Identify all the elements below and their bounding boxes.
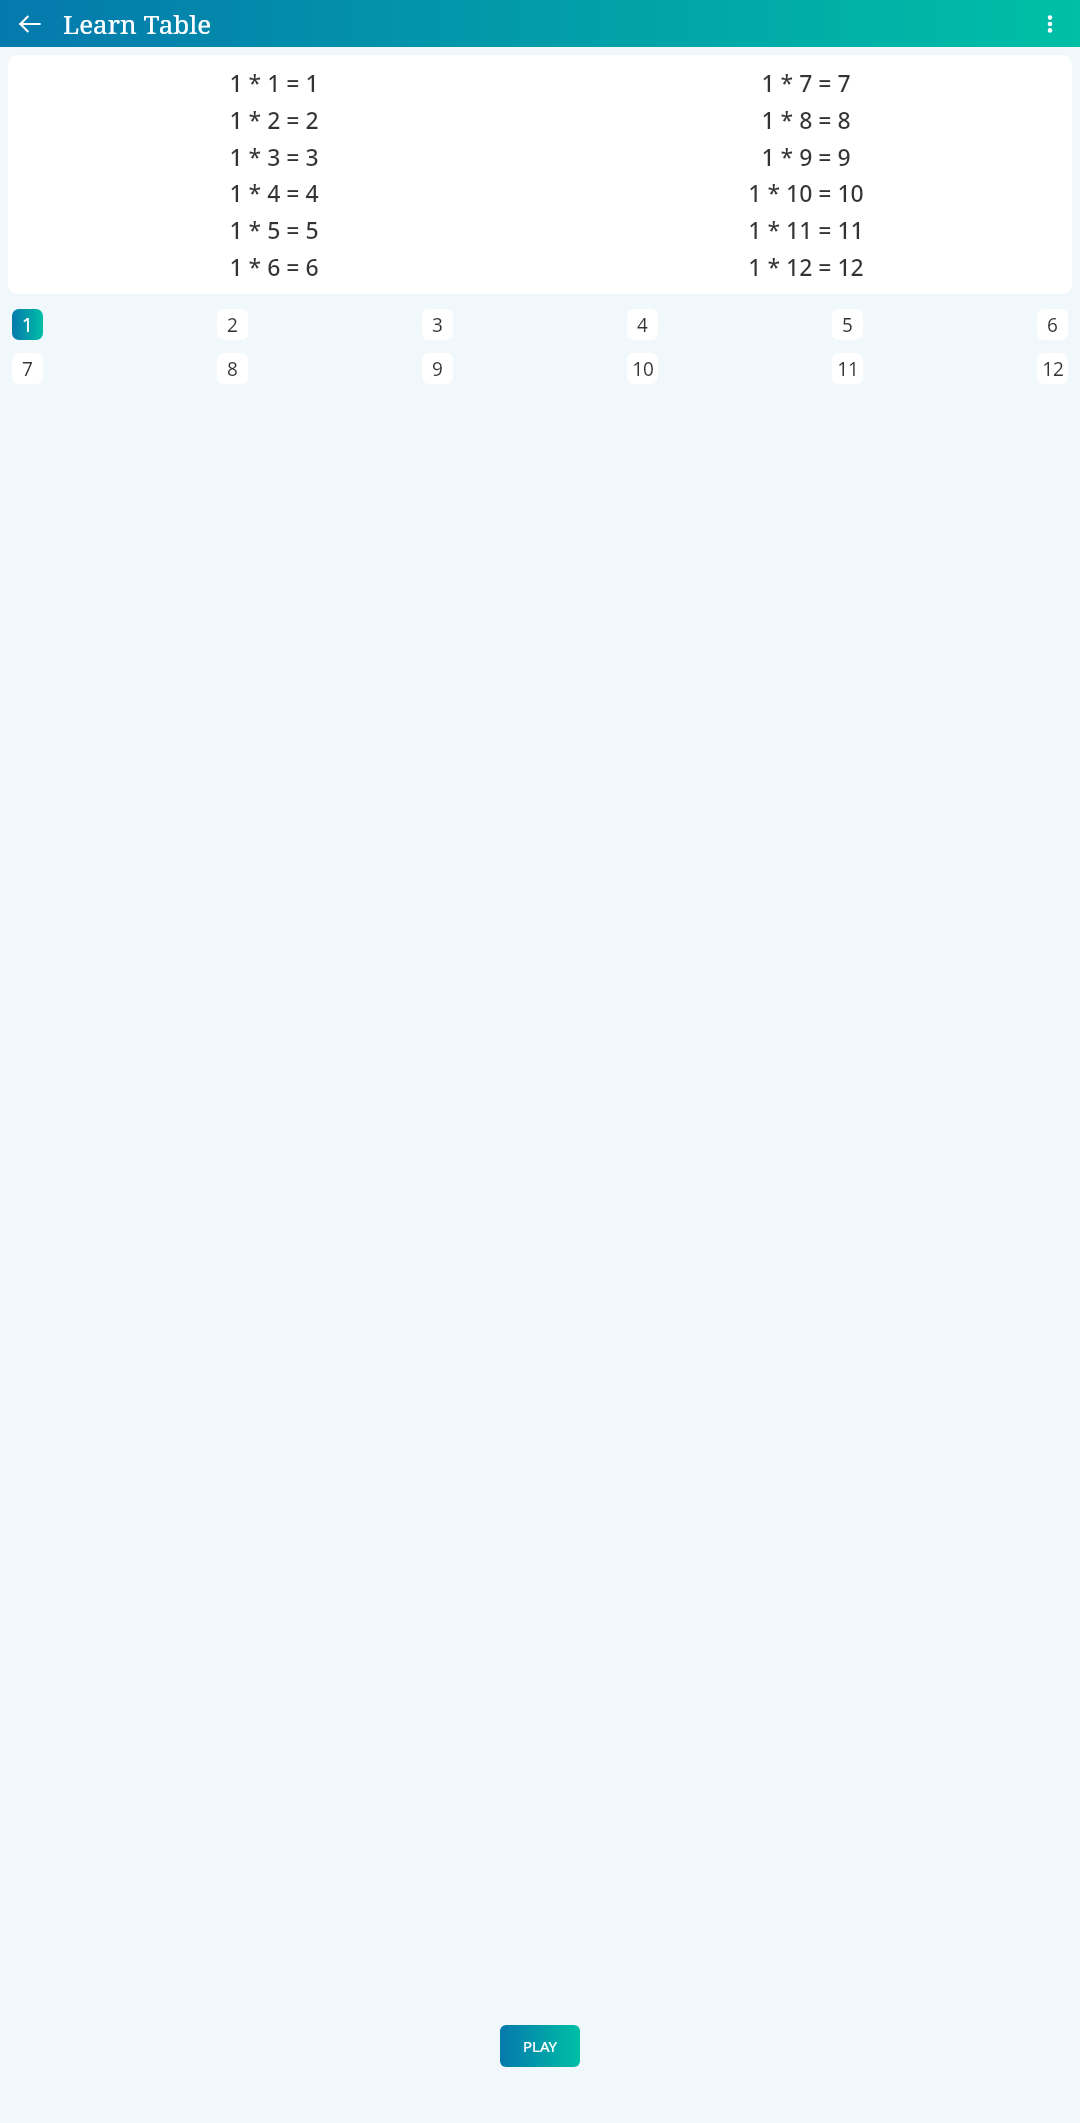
staticText: 1 * 5 = 5: [229, 214, 319, 245]
staticText: 6: [1047, 312, 1058, 338]
staticText: 12: [1042, 356, 1064, 382]
staticText: 7: [22, 356, 33, 382]
staticText: 1 * 8 = 8: [761, 104, 851, 135]
button[interactable]: 3: [422, 309, 453, 340]
button[interactable]: 4: [627, 309, 658, 340]
button[interactable]: 11: [832, 353, 863, 384]
button[interactable]: 2: [217, 309, 248, 340]
button[interactable]: 6: [1037, 309, 1068, 340]
staticText: 10: [632, 356, 654, 382]
staticText: 1 * 4 = 4: [229, 177, 319, 208]
staticText: Learn Table: [63, 6, 212, 41]
staticText: 1 * 10 = 10: [748, 177, 864, 208]
staticText: 1 * 7 = 7: [761, 67, 851, 98]
staticText: 5: [842, 312, 853, 338]
staticText: 9: [432, 356, 443, 382]
button[interactable]: 12: [1037, 353, 1068, 384]
button[interactable]: More options: [1026, 0, 1074, 47]
staticText: 8: [227, 356, 238, 382]
button[interactable]: Back: [6, 0, 54, 47]
staticText: 1 * 1 = 1: [229, 67, 319, 98]
button[interactable]: 5: [832, 309, 863, 340]
staticText: PLAY: [523, 2036, 558, 2056]
button[interactable]: 9: [422, 353, 453, 384]
button[interactable]: 7: [12, 353, 43, 384]
staticText: 1 * 12 = 12: [748, 251, 864, 282]
button[interactable]: 8: [217, 353, 248, 384]
staticText: 1 * 6 = 6: [229, 251, 319, 282]
staticText: 11: [837, 356, 859, 382]
staticText: 1 * 2 = 2: [229, 104, 319, 135]
staticText: 1 * 9 = 9: [761, 141, 851, 172]
staticText: 3: [432, 312, 443, 338]
staticText: 2: [227, 312, 238, 338]
button[interactable]: 1: [12, 309, 43, 340]
staticText: 1 * 11 = 11: [748, 214, 864, 245]
staticText: 4: [637, 312, 648, 338]
staticText: 1 * 3 = 3: [229, 141, 319, 172]
staticText: 1: [22, 312, 33, 338]
button[interactable]: 10: [627, 353, 658, 384]
button[interactable]: PLAY: [500, 2025, 580, 2067]
